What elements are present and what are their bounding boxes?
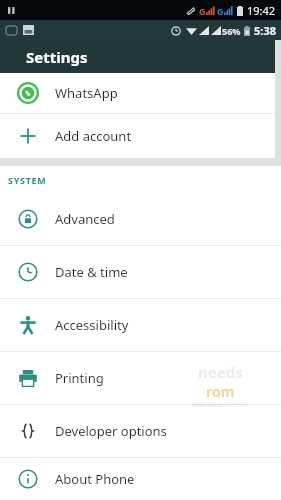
staticText: WhatsApp [55, 84, 118, 102]
button[interactable]: Date & time [0, 246, 281, 298]
staticText: Date & time [55, 263, 128, 281]
button[interactable]: Advanced [0, 193, 281, 245]
staticText: Printing [55, 369, 104, 387]
button[interactable]: Add account [0, 114, 275, 158]
button[interactable]: Printing [0, 352, 281, 404]
button[interactable]: WhatsApp [0, 73, 275, 113]
staticText: 19:42 [247, 3, 276, 18]
staticText: G [217, 5, 224, 17]
staticText: rom [206, 382, 235, 401]
staticText: 5:38 [254, 23, 276, 38]
staticText: Developer options [55, 422, 167, 440]
staticText: G [199, 5, 206, 17]
button[interactable]: Developer options [0, 405, 281, 457]
staticText: Add account [55, 127, 132, 145]
staticText: About Phone [55, 470, 135, 488]
staticText: SYSTEM [8, 174, 47, 186]
staticText: Settings [26, 47, 88, 67]
staticText: needs [198, 362, 243, 382]
staticText: www.needrom.com [192, 401, 248, 409]
button[interactable]: Accessibility [0, 299, 281, 351]
staticText: Advanced [55, 210, 115, 228]
button[interactable]: About Phone [0, 458, 281, 500]
staticText: Accessibility [55, 316, 129, 334]
staticText: 56% [222, 25, 241, 37]
